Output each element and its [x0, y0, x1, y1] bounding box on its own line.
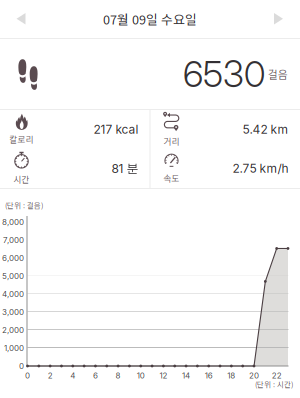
staticText: 5,000	[2, 271, 24, 281]
button[interactable]: 시간	[0, 149, 149, 188]
staticText: 8	[116, 371, 121, 380]
staticText: (단위 : 걸음)	[5, 200, 43, 210]
staticText: 12	[159, 371, 167, 380]
staticText: 거리	[163, 135, 179, 147]
staticText: 4	[70, 371, 75, 380]
staticText: 8,000	[2, 217, 24, 227]
staticText: 81 분	[111, 161, 138, 176]
staticText: 22	[272, 371, 282, 380]
staticText: 걸음	[268, 66, 288, 82]
staticText: 5.42 km	[242, 122, 288, 137]
staticText: 217 kcal	[93, 122, 138, 137]
staticText: 2,000	[2, 325, 24, 335]
staticText: 2	[48, 371, 53, 380]
staticText: (단위 : 시간)	[255, 379, 293, 389]
staticText: 2.75 km/h	[232, 161, 288, 176]
staticText: 16	[205, 371, 213, 380]
staticText: 3,000	[2, 307, 24, 317]
button[interactable]: Previous day	[0, 0, 46, 38]
staticText: 6530	[183, 52, 265, 96]
staticText: 07월 09일 수요일	[103, 10, 197, 28]
button[interactable]: 칼로리	[0, 110, 149, 149]
button[interactable]: Next day	[254, 0, 300, 38]
staticText: 0	[19, 361, 24, 371]
staticText: 7,000	[3, 235, 24, 245]
staticText: 속도	[163, 172, 179, 184]
staticText: 0	[25, 371, 30, 380]
staticText: 6	[93, 371, 98, 380]
staticText: 칼로리	[9, 133, 33, 145]
staticText: 1,000	[4, 343, 24, 353]
staticText: 20	[249, 371, 259, 380]
staticText: 6,000	[2, 253, 24, 263]
button[interactable]: 속도	[150, 149, 299, 188]
staticText: 시간	[13, 173, 29, 185]
staticText: 14	[182, 371, 190, 380]
staticText: 4,000	[2, 289, 24, 299]
staticText: 18	[227, 371, 235, 380]
button[interactable]: 거리	[150, 110, 299, 149]
staticText: 10	[137, 371, 145, 380]
